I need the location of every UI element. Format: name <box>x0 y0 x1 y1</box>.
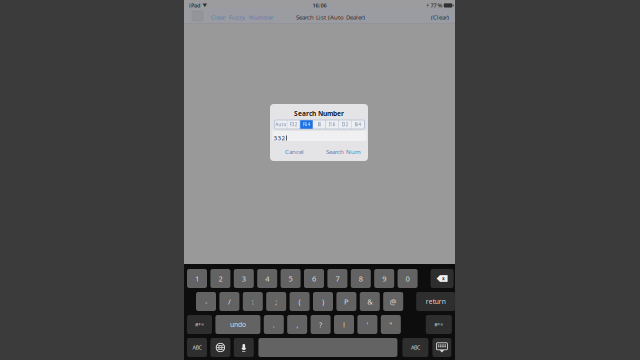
button[interactable]: Next keyboard <box>210 338 230 357</box>
button[interactable]: ' <box>357 315 377 334</box>
staticText: x <box>442 275 445 282</box>
button[interactable]: Cancel <box>270 143 319 160</box>
staticText: ) <box>322 296 324 307</box>
button[interactable]: & <box>360 292 380 311</box>
staticText: Number <box>249 13 273 21</box>
button[interactable]: 2 <box>210 269 230 288</box>
staticText: F64 <box>303 121 311 127</box>
staticText: 5 <box>289 273 293 284</box>
button[interactable]: 7 <box>327 269 347 288</box>
button[interactable]: Number <box>249 13 273 21</box>
button[interactable]: I32 <box>339 120 352 129</box>
staticText: ABC <box>192 344 201 351</box>
button[interactable]: 1 <box>187 269 207 288</box>
button[interactable]: ? <box>311 315 331 334</box>
staticText: 4 <box>265 273 269 284</box>
staticText: 1 <box>195 273 199 284</box>
staticText: F32 <box>290 121 298 127</box>
button[interactable]: F32 <box>287 120 300 129</box>
button[interactable]: / <box>219 292 239 311</box>
button[interactable]: 5 <box>281 269 301 288</box>
staticText: 77 % <box>431 2 443 9</box>
staticText: Search Num <box>326 147 361 156</box>
button[interactable]: undo <box>215 315 260 334</box>
staticText: : <box>252 296 254 307</box>
button[interactable]: " <box>381 315 401 334</box>
button[interactable]: Dictate <box>234 338 254 357</box>
button[interactable]: I8 <box>313 120 326 129</box>
button[interactable]: I16 <box>326 120 339 129</box>
button[interactable]: Search Num <box>319 143 368 160</box>
staticText: 6 <box>312 273 316 284</box>
staticText: Search Number <box>294 109 344 118</box>
button[interactable]: ( <box>290 292 310 311</box>
staticText: 7 <box>335 273 339 284</box>
staticText: Clear <box>211 13 225 21</box>
button[interactable]: 4 <box>257 269 277 288</box>
button[interactable]: #+= <box>426 315 452 334</box>
button[interactable]: ; <box>266 292 286 311</box>
staticText: 2 <box>218 273 222 284</box>
staticText: / <box>228 296 231 307</box>
button[interactable]: P <box>336 292 356 311</box>
staticText: #+= <box>434 321 443 328</box>
staticText: undo <box>230 320 246 329</box>
button[interactable]: 6 <box>304 269 324 288</box>
staticText: . <box>273 319 275 330</box>
button[interactable]: @ <box>383 292 403 311</box>
button[interactable]: 3 <box>234 269 254 288</box>
staticText: 8 <box>359 273 363 284</box>
staticText: 3 <box>242 273 246 284</box>
staticText: @ <box>390 296 397 307</box>
button[interactable]: Delete <box>431 269 454 288</box>
staticText: Auto <box>275 121 286 127</box>
button[interactable]: 8 <box>351 269 371 288</box>
staticText: I16 <box>329 121 336 127</box>
staticText: 332 <box>273 134 285 142</box>
button[interactable]: Auto <box>274 120 287 129</box>
button[interactable]: I64 <box>352 120 364 129</box>
staticText: ? <box>319 319 322 330</box>
staticText: , <box>296 319 298 330</box>
staticText: 16:06 <box>312 2 326 9</box>
staticText: ; <box>275 296 277 307</box>
staticText: 0 <box>406 273 410 284</box>
button[interactable]: . <box>264 315 284 334</box>
staticText: P <box>344 296 349 307</box>
button[interactable]: F64 <box>300 120 313 129</box>
staticText: iPad <box>189 2 201 9</box>
button[interactable]: , <box>287 315 307 334</box>
staticText: (Clear) <box>431 13 449 21</box>
button[interactable]: 9 <box>374 269 394 288</box>
button[interactable]: Fuzzy <box>229 13 245 21</box>
button[interactable]: ! <box>334 315 354 334</box>
staticText: ABC <box>411 344 420 351</box>
button[interactable]: 0 <box>398 269 418 288</box>
button[interactable]: Clear <box>211 13 225 21</box>
button[interactable]: return <box>416 292 455 311</box>
staticText: I32 <box>342 121 349 127</box>
button[interactable]: Space <box>258 338 397 357</box>
button[interactable]: ) <box>313 292 333 311</box>
staticText: return <box>426 297 446 306</box>
staticText: I8 <box>317 121 321 127</box>
button[interactable]: : <box>243 292 263 311</box>
staticText: & <box>367 296 372 307</box>
button[interactable]: ABC <box>402 338 428 357</box>
staticText: Search List (Auto Dealer) <box>296 13 365 21</box>
staticText: " <box>389 319 392 330</box>
staticText: #+= <box>195 321 204 328</box>
staticText: ' <box>366 319 368 330</box>
staticText: ( <box>299 296 301 307</box>
staticText: Cancel <box>285 147 304 156</box>
staticText: ! <box>343 319 345 330</box>
staticText: Fuzzy <box>229 13 245 21</box>
button[interactable]: - <box>196 292 216 311</box>
staticText: I64 <box>355 121 362 127</box>
button[interactable]: ABC <box>187 338 207 357</box>
button[interactable]: #+= <box>187 315 212 334</box>
staticText: - <box>205 296 207 307</box>
button[interactable]: Hide keyboard <box>432 338 451 357</box>
button[interactable]: (Clear) <box>431 13 449 21</box>
